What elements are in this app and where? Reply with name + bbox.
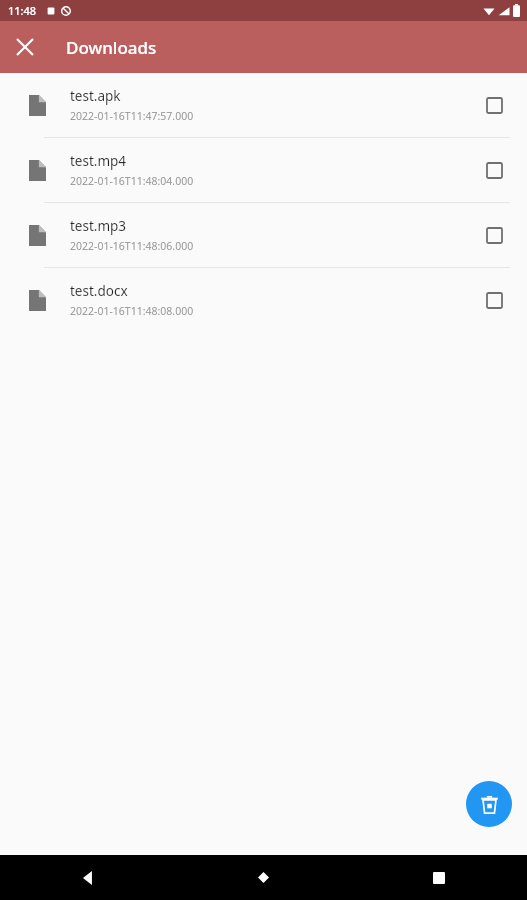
button[interactable]: Select test.apk (474, 85, 514, 125)
button[interactable]: Delete (466, 781, 512, 827)
staticText: 11:48 (8, 3, 37, 18)
button[interactable]: Select test.mp4 (474, 150, 514, 190)
staticText: test.mp4 (70, 152, 127, 170)
staticText: 2022-01-16T11:48:06.000 (70, 239, 194, 253)
button[interactable]: test.apk (0, 73, 527, 137)
button[interactable]: Select test.docx (474, 280, 514, 320)
button[interactable]: test.mp3 (0, 203, 527, 267)
button[interactable]: test.docx (0, 268, 527, 332)
button[interactable]: Back (0, 855, 175, 900)
staticText: test.apk (70, 87, 121, 105)
staticText: test.docx (70, 282, 128, 300)
button[interactable]: Home (175, 855, 351, 900)
button[interactable]: test.mp4 (0, 138, 527, 202)
staticText: 2022-01-16T11:47:57.000 (70, 109, 194, 123)
staticText: Downloads (66, 36, 157, 59)
staticText: 2022-01-16T11:48:04.000 (70, 174, 194, 188)
button[interactable]: Recents (351, 855, 527, 900)
button[interactable]: Select test.mp3 (474, 215, 514, 255)
button[interactable]: Close (7, 29, 43, 65)
staticText: test.mp3 (70, 217, 127, 235)
staticText: 2022-01-16T11:48:08.000 (70, 304, 194, 318)
